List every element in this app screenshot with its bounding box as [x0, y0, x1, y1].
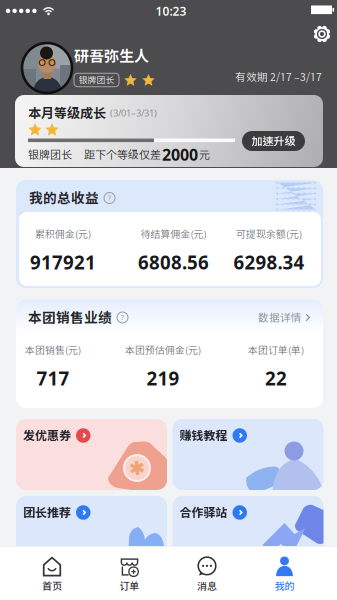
staticText: 可提现余额(元) [236, 228, 302, 240]
button[interactable]: 我的 [249, 551, 319, 597]
staticText: 我的总收益 [29, 190, 99, 206]
button[interactable]: 收益说明 [104, 192, 115, 203]
button[interactable]: 数据详情 [258, 311, 310, 324]
button[interactable]: 订单 [94, 551, 164, 597]
button[interactable]: 首页 [17, 551, 87, 597]
staticText: 我的 [274, 580, 294, 592]
staticText: 元 [199, 148, 210, 161]
button[interactable]: Settings [313, 25, 331, 43]
staticText: 717 [36, 366, 69, 391]
staticText: 本月等级成长 [28, 105, 106, 121]
button[interactable]: 发优惠券 [16, 419, 167, 490]
staticText: 本团销售业绩 [28, 309, 112, 325]
staticText: 本团销售(元) [25, 344, 81, 356]
staticText: 本团订单(单) [248, 344, 304, 356]
staticText: 22 [265, 366, 287, 391]
staticText: 距下个等级仅差 [84, 148, 161, 161]
staticText: 917921 [30, 250, 96, 275]
staticText: 银牌团长 [78, 75, 114, 85]
staticText: 发优惠券 [23, 428, 71, 443]
staticText: ? [108, 194, 111, 202]
staticText: 待结算佣金(元) [140, 228, 206, 240]
button[interactable]: 赚钱教程 [172, 419, 323, 490]
staticText: 合作驿站 [179, 505, 227, 520]
button[interactable]: 合作驿站 [172, 496, 323, 567]
button[interactable]: 团长推荐 [16, 496, 167, 567]
staticText: 219 [146, 366, 179, 391]
staticText: 数据详情 [258, 311, 302, 324]
button[interactable]: 业绩说明 [117, 312, 128, 323]
button[interactable]: 消息 [172, 551, 242, 597]
staticText: 银牌团长 [28, 148, 72, 161]
staticText: 研吾弥生人 [74, 47, 149, 65]
button[interactable]: 加速升级 [242, 131, 305, 151]
staticText: (3/01–3/31) [110, 107, 157, 119]
staticText: ? [121, 313, 124, 322]
staticText: 赚钱教程 [179, 428, 227, 443]
staticText: 有效期 2/17 –3/17 [235, 71, 322, 83]
staticText: 6808.56 [138, 250, 209, 275]
staticText: 首页 [42, 580, 62, 592]
staticText: 10:23 [155, 3, 186, 19]
staticText: 团长推荐 [23, 505, 71, 520]
staticText: 累积佣金(元) [35, 228, 91, 240]
staticText: 2000 [162, 144, 198, 165]
staticText: 订单 [119, 580, 139, 592]
staticText: 加速升级 [251, 134, 295, 148]
staticText: 6298.34 [233, 250, 304, 275]
staticText: 本团预估佣金(元) [125, 344, 201, 356]
staticText: 消息 [197, 580, 217, 592]
